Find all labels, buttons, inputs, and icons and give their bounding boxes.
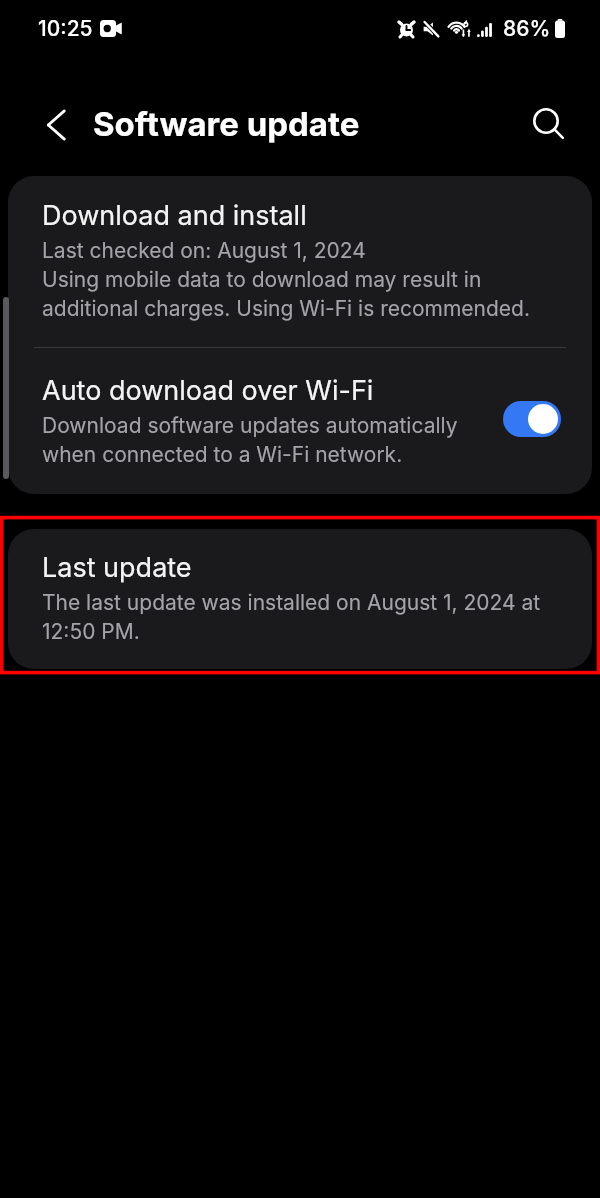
staticText: Software update [93, 104, 360, 144]
button[interactable]: Auto download over Wi-Fi, on [503, 401, 561, 437]
staticText: Auto download over Wi-Fi [42, 374, 374, 407]
staticText: Last update [42, 551, 192, 584]
staticText: Last checked on: August 1, 2024 Using mo… [42, 238, 530, 321]
button[interactable]: Auto download over Wi-Fi [8, 348, 592, 494]
staticText: 86% [503, 16, 551, 41]
button[interactable]: Last update [8, 529, 592, 669]
staticText: 10:25 [38, 16, 93, 41]
button[interactable]: Download and install [8, 176, 592, 347]
button[interactable]: Search [521, 96, 577, 152]
staticText: Download and install [42, 199, 307, 232]
staticText: Download software updates automatically … [42, 413, 458, 467]
staticText: The last update was installed on August … [42, 590, 541, 644]
button[interactable]: Navigate up [28, 97, 84, 153]
